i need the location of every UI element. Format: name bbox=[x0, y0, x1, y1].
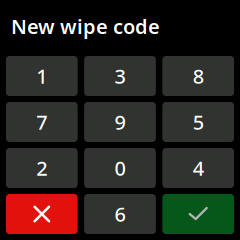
button[interactable]: 0 bbox=[84, 148, 156, 188]
staticText: 2 bbox=[36, 155, 47, 181]
staticText: 8 bbox=[193, 63, 204, 89]
button[interactable]: 5 bbox=[162, 102, 234, 142]
button[interactable]: 6 bbox=[84, 194, 156, 234]
button[interactable]: 1 bbox=[6, 56, 78, 96]
button[interactable]: 7 bbox=[6, 102, 78, 142]
staticText: 5 bbox=[193, 109, 204, 135]
staticText: 6 bbox=[114, 201, 125, 227]
button[interactable]: 8 bbox=[162, 56, 234, 96]
button[interactable]: 2 bbox=[6, 148, 78, 188]
button[interactable]: Cancel bbox=[6, 194, 78, 234]
staticText: 4 bbox=[193, 155, 204, 181]
staticText: 1 bbox=[36, 63, 47, 89]
staticText: 7 bbox=[36, 109, 47, 135]
button[interactable]: 4 bbox=[162, 148, 234, 188]
staticText: 3 bbox=[114, 63, 125, 89]
button[interactable]: 3 bbox=[84, 56, 156, 96]
staticText: 9 bbox=[114, 109, 125, 135]
staticText: New wipe code bbox=[11, 13, 160, 40]
button[interactable]: Confirm bbox=[162, 194, 234, 234]
staticText: 0 bbox=[114, 155, 125, 181]
button[interactable]: 9 bbox=[84, 102, 156, 142]
